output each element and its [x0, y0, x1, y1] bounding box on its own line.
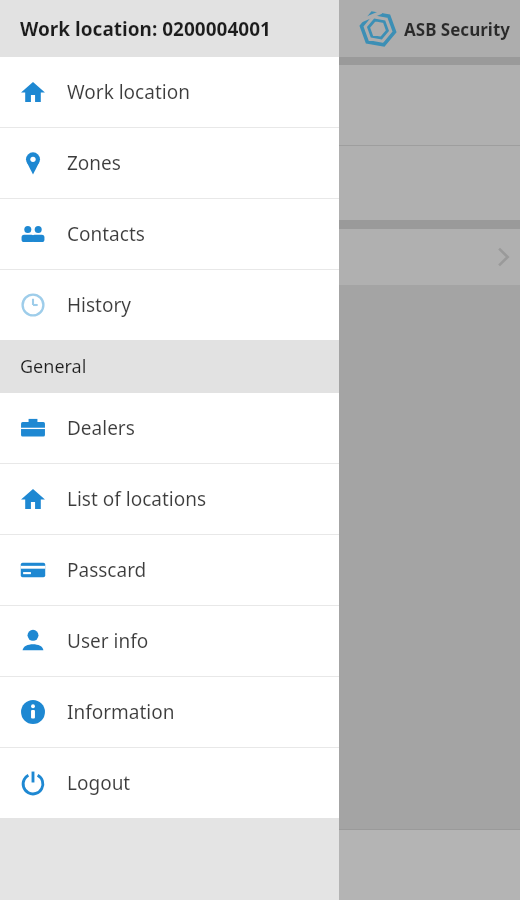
button[interactable]: Logout [0, 748, 339, 818]
button[interactable]: User info [0, 606, 339, 676]
button[interactable]: Zones [0, 128, 339, 198]
staticText: List of locations [67, 486, 207, 512]
staticText: ASB Security [404, 18, 510, 41]
button[interactable]: Passcard [0, 535, 339, 605]
staticText: History [67, 292, 131, 318]
button[interactable]: Contacts [0, 199, 339, 269]
button[interactable]: List of locations [0, 464, 339, 534]
staticText: Work location: 0200004001 [20, 16, 271, 42]
button[interactable]: Information [0, 677, 339, 747]
staticText: Work location [67, 79, 190, 105]
staticText: Tele2 store [18, 109, 116, 135]
staticText: General [20, 354, 87, 379]
button[interactable]: Work location [0, 57, 339, 127]
staticText: Logout [67, 770, 131, 796]
staticText: User info [67, 628, 149, 654]
staticText: Information [67, 699, 175, 725]
staticText: Dealers [67, 415, 135, 441]
button[interactable]: Dealers [0, 393, 339, 463]
button[interactable]: History [0, 270, 339, 340]
staticText: Passcard [67, 557, 147, 583]
staticText: Zones [67, 150, 121, 176]
staticText: Contacts [67, 221, 145, 247]
